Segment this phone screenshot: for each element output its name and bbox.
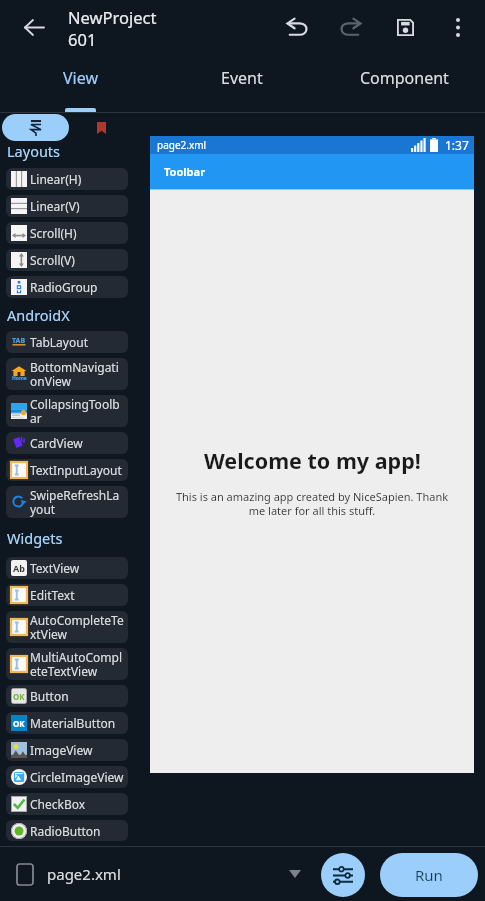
button[interactable]: Undo: [277, 7, 317, 47]
button[interactable]: Save: [385, 7, 425, 47]
button[interactable]: CheckBox: [6, 793, 128, 815]
staticText: Welcome to my app!: [204, 446, 421, 475]
button[interactable]: Linear(V): [6, 195, 128, 217]
staticText: TAB: [12, 336, 26, 346]
button[interactable]: Back: [14, 7, 54, 47]
staticText: Toolbar: [164, 164, 206, 179]
staticText: AndroidX: [7, 305, 150, 325]
button[interactable]: SwipeRefreshLayout: [6, 486, 128, 518]
staticText: Linear(H): [30, 171, 82, 187]
button[interactable]: Ab: [6, 557, 128, 579]
staticText: RadioGroup: [30, 279, 98, 295]
staticText: TabLayout: [30, 334, 88, 350]
button[interactable]: Home: [6, 358, 128, 390]
staticText: TextView: [30, 560, 80, 576]
staticText: Linear(V): [30, 198, 80, 214]
staticText: MultiAutoCompleteTextView: [30, 649, 125, 680]
staticText: CollapsingToolbar: [30, 396, 125, 427]
button[interactable]: Event: [161, 58, 323, 112]
button[interactable]: Redo: [330, 7, 370, 47]
staticText: Scroll(V): [30, 252, 75, 268]
staticText: This is an amazing app created by NiceSa…: [167, 489, 457, 518]
staticText: Run: [415, 865, 443, 885]
button[interactable]: Bookmarks: [89, 116, 113, 140]
staticText: page2.xml: [157, 138, 207, 152]
button[interactable]: OK: [6, 712, 128, 734]
staticText: CircleImageView: [30, 769, 124, 785]
staticText: OK: [13, 691, 25, 702]
staticText: RadioButton: [30, 823, 101, 839]
button[interactable]: RadioGroup: [6, 276, 128, 298]
button[interactable]: View: [0, 58, 161, 112]
staticText: AutoCompleteTextView: [30, 612, 125, 643]
staticText: 601: [68, 28, 97, 50]
staticText: Home: [12, 375, 27, 382]
button[interactable]: AutoCompleteTextView: [6, 611, 128, 643]
button[interactable]: Scroll(H): [6, 222, 128, 244]
button[interactable]: Settings: [321, 853, 365, 897]
button[interactable]: CardView: [6, 432, 128, 454]
button[interactable]: MultiAutoCompleteTextView: [6, 648, 128, 680]
staticText: Scroll(H): [30, 225, 77, 241]
staticText: EditText: [30, 587, 75, 603]
button[interactable]: RadioButton: [6, 820, 128, 841]
staticText: CheckBox: [30, 796, 86, 812]
staticText: View: [63, 67, 99, 89]
staticText: BottomNavigationView: [30, 359, 125, 390]
button[interactable]: EditText: [6, 584, 128, 606]
staticText: page2.xml: [47, 864, 121, 884]
staticText: Widgets: [7, 528, 150, 548]
button[interactable]: CollapsingToolbar: [6, 395, 128, 427]
button[interactable]: Component: [323, 58, 485, 112]
staticText: Event: [221, 67, 263, 89]
staticText: Component: [360, 67, 449, 89]
staticText: 1:37: [445, 137, 469, 153]
button[interactable]: ImageView: [6, 739, 128, 761]
button[interactable]: TextInputLayout: [6, 459, 128, 481]
staticText: TextInputLayout: [30, 462, 122, 478]
button[interactable]: Scroll(V): [6, 249, 128, 271]
staticText: SwipeRefreshLayout: [30, 487, 125, 518]
button[interactable]: Run: [380, 853, 478, 897]
staticText: MaterialButton: [30, 715, 116, 731]
staticText: Ab: [13, 562, 25, 574]
staticText: CardView: [30, 435, 83, 451]
staticText: NewProject: [68, 6, 157, 28]
button[interactable]: Linear(H): [6, 168, 128, 190]
staticText: ImageView: [30, 742, 93, 758]
button[interactable]: page2.xml: [7, 847, 287, 901]
staticText: OK: [13, 718, 25, 729]
staticText: Layouts: [7, 141, 150, 161]
button[interactable]: Select file: [283, 847, 307, 901]
button[interactable]: TAB: [6, 331, 128, 353]
button[interactable]: More options: [438, 7, 478, 47]
button[interactable]: Widgets palette: [2, 114, 69, 141]
button[interactable]: CircleImageView: [6, 766, 128, 788]
staticText: Button: [30, 688, 69, 704]
button[interactable]: OK: [6, 685, 128, 707]
